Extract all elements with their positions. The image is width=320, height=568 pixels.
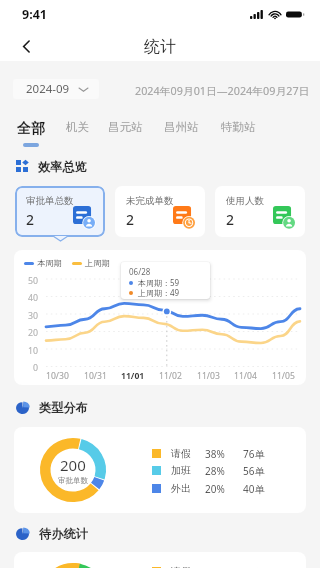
- staticText: 类型分布: [39, 400, 88, 414]
- staticText: 38%: [205, 447, 225, 461]
- staticText: 40单: [243, 482, 265, 496]
- staticText: 本周期：59: [138, 277, 180, 288]
- staticText: 50: [18, 275, 38, 287]
- staticText: 使用人数: [226, 195, 264, 207]
- staticText: 30: [18, 310, 38, 322]
- staticText: 20%: [205, 482, 225, 496]
- staticText: 审批单总数: [26, 195, 74, 207]
- button[interactable]: Back: [12, 32, 40, 60]
- button[interactable]: 使用人数: [215, 186, 305, 237]
- button[interactable]: 审批单总数: [15, 186, 105, 237]
- staticText: 11/03: [197, 370, 220, 382]
- staticText: 10/31: [84, 370, 107, 382]
- button[interactable]: 全部: [11, 116, 51, 142]
- staticText: 06/28: [129, 266, 151, 277]
- staticText: 未完成单数: [126, 195, 174, 207]
- staticText: 2: [126, 210, 135, 229]
- staticText: 审批单数: [58, 476, 88, 485]
- button[interactable]: 未完成单数: [115, 186, 205, 237]
- staticText: 20: [18, 327, 38, 339]
- staticText: 待办统计: [39, 526, 88, 540]
- staticText: 56单: [243, 464, 265, 478]
- staticText: 外出: [171, 482, 191, 495]
- staticText: 统计: [144, 37, 176, 57]
- staticText: 昌元站: [108, 120, 143, 134]
- staticText: 昌州站: [164, 120, 199, 134]
- staticText: 2: [226, 210, 235, 229]
- staticText: 11/04: [234, 370, 257, 382]
- staticText: 加班: [171, 464, 191, 477]
- staticText: 2024-09: [26, 81, 70, 97]
- staticText: 40: [18, 292, 38, 304]
- staticText: 76单: [243, 447, 265, 461]
- staticText: 9:41: [22, 6, 47, 23]
- staticText: 10/30: [46, 370, 69, 382]
- button[interactable]: 昌州站: [158, 116, 205, 138]
- staticText: 上周期：49: [138, 287, 180, 298]
- button[interactable]: 特勤站: [215, 116, 262, 138]
- staticText: 效率总览: [38, 159, 87, 173]
- staticText: 2024年09月01日—2024年09月27日: [135, 83, 310, 98]
- staticText: 28%: [205, 464, 225, 478]
- staticText: 请假: [171, 447, 191, 460]
- staticText: 200: [60, 455, 86, 475]
- staticText: 上周期: [85, 258, 110, 268]
- staticText: 11/01: [121, 370, 145, 382]
- button[interactable]: 2024-09: [13, 79, 99, 99]
- staticText: 10: [18, 345, 38, 357]
- button[interactable]: 昌元站: [102, 116, 149, 138]
- staticText: 全部: [17, 120, 45, 138]
- staticText: 特勤站: [221, 120, 256, 134]
- staticText: 请假: [171, 565, 191, 568]
- staticText: 2: [26, 210, 35, 229]
- staticText: 本周期: [37, 258, 62, 268]
- staticText: 11/02: [159, 370, 182, 382]
- staticText: 机关: [66, 120, 89, 134]
- staticText: 11/05: [272, 370, 295, 382]
- button[interactable]: 机关: [60, 116, 95, 138]
- staticText: 0: [18, 362, 38, 374]
